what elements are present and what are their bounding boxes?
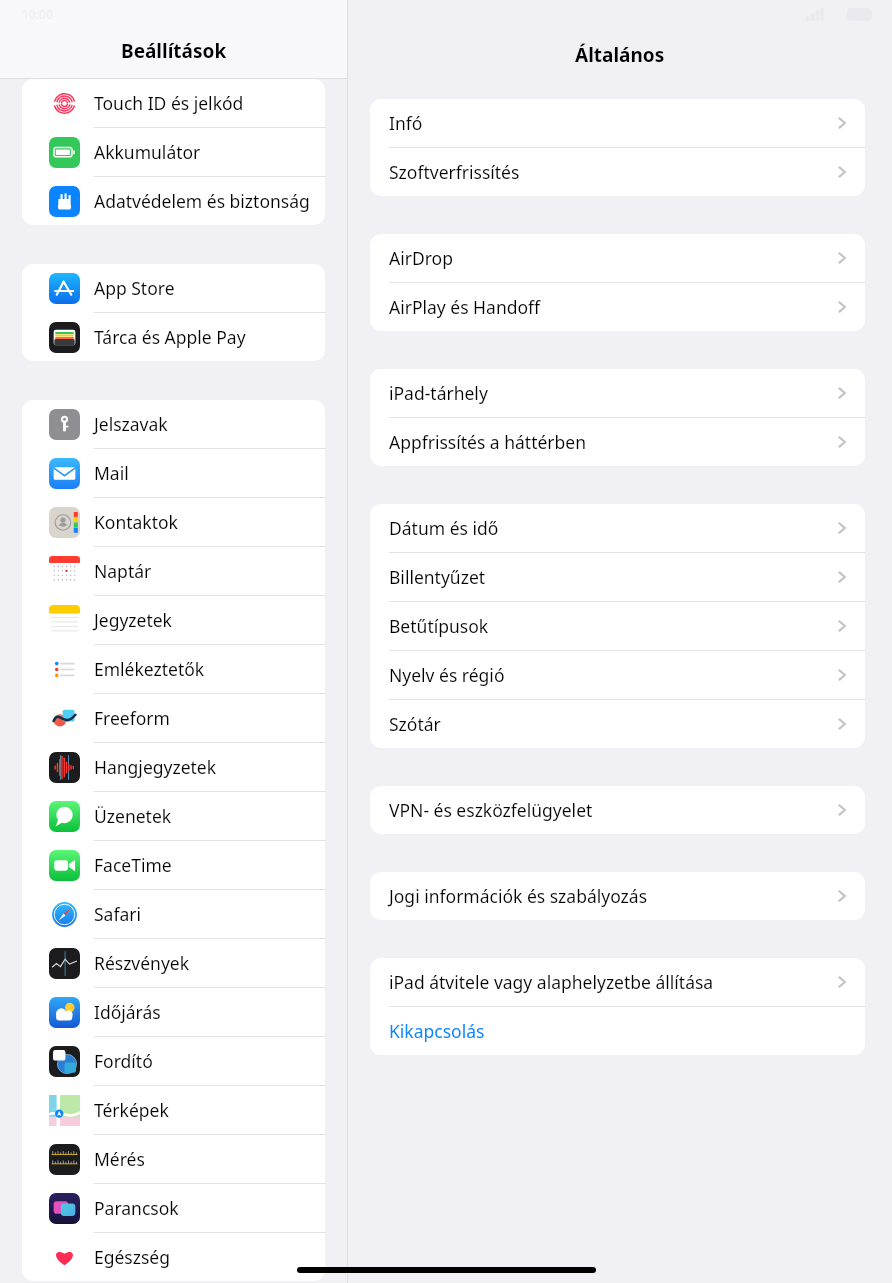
- staticText: Általános: [575, 42, 665, 68]
- button[interactable]: Időjárás: [22, 988, 325, 1037]
- button[interactable]: Betűtípusok: [370, 602, 865, 651]
- button[interactable]: Parancsok: [22, 1184, 325, 1233]
- staticText: Hangjegyzetek: [94, 755, 217, 779]
- staticText: Akkumulátor: [94, 140, 201, 164]
- staticText: Beállítások: [121, 38, 227, 64]
- staticText: iPad-tárhely: [389, 381, 488, 405]
- staticText: Fordító: [94, 1049, 153, 1073]
- button[interactable]: Hangjegyzetek: [22, 743, 325, 792]
- staticText: Naptár: [94, 559, 152, 583]
- button[interactable]: iPad-tárhely: [370, 369, 865, 418]
- button[interactable]: Infó: [370, 99, 865, 148]
- button[interactable]: Akkumulátor: [22, 128, 325, 177]
- button[interactable]: App Store: [22, 264, 325, 313]
- staticText: Dátum és idő: [389, 516, 499, 540]
- staticText: AirDrop: [389, 246, 453, 270]
- staticText: AirPlay és Handoff: [389, 295, 541, 319]
- staticText: Egészség: [94, 1245, 170, 1269]
- staticText: Billentyűzet: [389, 565, 486, 589]
- button[interactable]: Térképek: [22, 1086, 325, 1135]
- staticText: Infó: [389, 111, 423, 135]
- button[interactable]: Nyelv és régió: [370, 651, 865, 700]
- staticText: Szótár: [389, 712, 441, 736]
- button[interactable]: Jogi információk és szabályozás: [370, 872, 865, 920]
- staticText: Szoftverfrissítés: [389, 160, 520, 184]
- staticText: Kontaktok: [94, 510, 178, 534]
- button[interactable]: Naptár: [22, 547, 325, 596]
- button[interactable]: VPN- és eszközfelügyelet: [370, 786, 865, 834]
- button[interactable]: Üzenetek: [22, 792, 325, 841]
- button[interactable]: Kontaktok: [22, 498, 325, 547]
- button[interactable]: Adatvédelem és biztonság: [22, 177, 325, 225]
- staticText: Térképek: [94, 1098, 169, 1122]
- button[interactable]: Mérés: [22, 1135, 325, 1184]
- button[interactable]: Appfrissítés a háttérben: [370, 418, 865, 466]
- button[interactable]: Tárca és Apple Pay: [22, 313, 325, 361]
- other: Cellular signal: [806, 8, 825, 21]
- staticText: App Store: [94, 276, 175, 300]
- staticText: Freeform: [94, 706, 170, 730]
- staticText: Nyelv és régió: [389, 663, 505, 687]
- button[interactable]: Szoftverfrissítés: [370, 148, 865, 196]
- staticText: Betűtípusok: [389, 614, 489, 638]
- staticText: FaceTime: [94, 853, 172, 877]
- button[interactable]: Touch ID és jelkód: [22, 79, 325, 128]
- staticText: Tárca és Apple Pay: [94, 325, 246, 349]
- button[interactable]: Billentyűzet: [370, 553, 865, 602]
- button[interactable]: Emlékeztetők: [22, 645, 325, 694]
- button[interactable]: Fordító: [22, 1037, 325, 1086]
- button[interactable]: Mail: [22, 449, 325, 498]
- staticText: Jelszavak: [94, 412, 168, 436]
- button[interactable]: AirDrop: [370, 234, 865, 283]
- button[interactable]: Jegyzetek: [22, 596, 325, 645]
- button[interactable]: AirPlay és Handoff: [370, 283, 865, 331]
- staticText: Mérés: [94, 1147, 145, 1171]
- staticText: Touch ID és jelkód: [94, 91, 244, 115]
- button[interactable]: Dátum és idő: [370, 504, 865, 553]
- button[interactable]: Kikapcsolás: [370, 1007, 865, 1055]
- button[interactable]: Szótár: [370, 700, 865, 748]
- button[interactable]: FaceTime: [22, 841, 325, 890]
- staticText: 10:00: [22, 6, 53, 22]
- staticText: Részvények: [94, 951, 190, 975]
- staticText: Kikapcsolás: [389, 1019, 485, 1043]
- button[interactable]: Egészség: [22, 1233, 325, 1281]
- staticText: Üzenetek: [94, 804, 172, 828]
- button[interactable]: Jelszavak: [22, 400, 325, 449]
- button[interactable]: iPad átvitele vagy alaphelyzetbe állítás…: [370, 958, 865, 1007]
- staticText: Időjárás: [94, 1000, 161, 1024]
- staticText: VPN- és eszközfelügyelet: [389, 798, 593, 822]
- staticText: Jogi információk és szabályozás: [389, 884, 648, 908]
- staticText: Safari: [94, 902, 142, 926]
- staticText: Appfrissítés a háttérben: [389, 430, 587, 454]
- staticText: iPad átvitele vagy alaphelyzetbe állítás…: [389, 970, 714, 994]
- button[interactable]: Freeform: [22, 694, 325, 743]
- staticText: Mail: [94, 461, 129, 485]
- staticText: Parancsok: [94, 1196, 179, 1220]
- staticText: Emlékeztetők: [94, 657, 205, 681]
- staticText: Jegyzetek: [94, 608, 172, 632]
- button[interactable]: Safari: [22, 890, 325, 939]
- staticText: Adatvédelem és biztonság: [94, 189, 310, 213]
- button[interactable]: Részvények: [22, 939, 325, 988]
